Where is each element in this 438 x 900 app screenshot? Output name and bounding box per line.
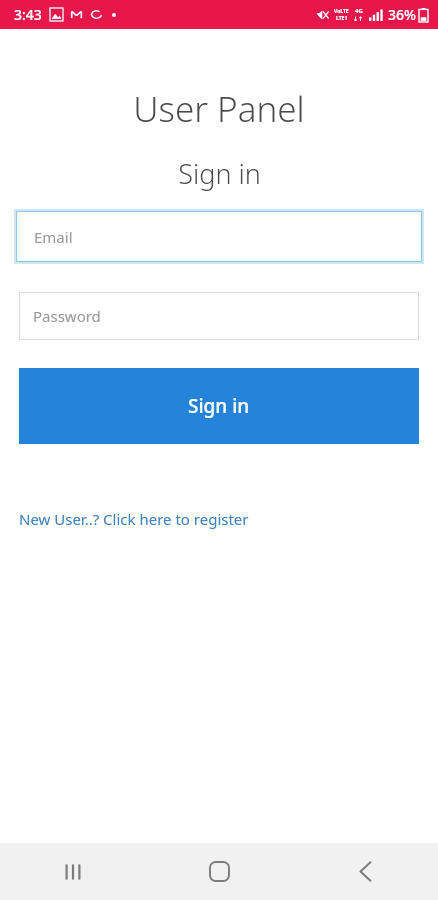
button[interactable]: Sign in	[19, 368, 419, 444]
staticText: Email	[34, 227, 73, 247]
button[interactable]: Recent apps	[0, 843, 146, 900]
staticText: Password	[33, 306, 101, 326]
button[interactable]: New User..? Click here to register	[19, 509, 249, 529]
staticText: Sign in	[188, 393, 250, 419]
staticText: 4G	[355, 7, 363, 15]
button[interactable]: Email	[16, 211, 422, 262]
staticText: 3:43	[14, 5, 42, 24]
staticText: LTE1	[336, 15, 348, 22]
staticText: 36%	[388, 5, 416, 24]
staticText: User Panel	[133, 85, 305, 133]
staticText: New User..? Click here to register	[19, 509, 249, 529]
staticText: Sign in	[178, 155, 261, 192]
button[interactable]: Password	[19, 292, 419, 340]
button[interactable]: Home	[146, 843, 292, 900]
staticText: ↓↑	[353, 15, 364, 22]
button[interactable]: Back	[292, 843, 438, 900]
staticText: VoLTE	[334, 8, 349, 15]
